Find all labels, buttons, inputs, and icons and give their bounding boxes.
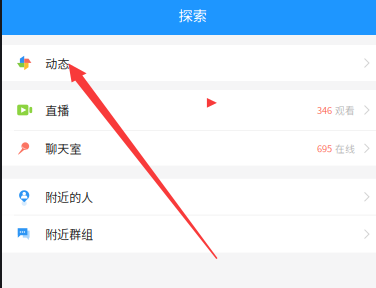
staticText: 在线 (335, 141, 355, 155)
staticText: 695 (317, 141, 332, 155)
button[interactable]: 附近的人 (0, 179, 376, 215)
button[interactable]: 直播 (0, 90, 376, 130)
staticText: 动态 (45, 54, 69, 72)
staticText: 聊天室 (45, 140, 81, 157)
staticText: 直播 (45, 101, 69, 119)
button[interactable]: 附近群组 (0, 216, 376, 253)
staticText: 附近的人 (45, 188, 93, 205)
staticText: 346 (317, 103, 332, 117)
button[interactable]: 动态 (0, 45, 376, 81)
staticText: 附近群组 (45, 225, 93, 243)
staticText: 观看 (335, 103, 355, 117)
staticText: 探索 (178, 5, 206, 25)
button[interactable]: 聊天室 (0, 131, 376, 166)
